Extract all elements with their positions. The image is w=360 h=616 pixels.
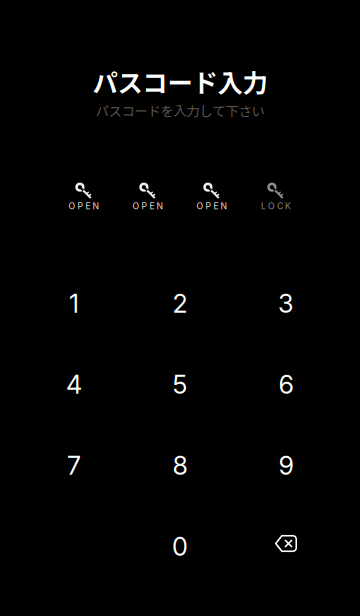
- staticText: O P E N: [132, 201, 163, 211]
- staticText: O P E N: [196, 201, 227, 211]
- staticText: 6: [278, 369, 293, 400]
- button[interactable]: 9: [233, 425, 339, 506]
- staticText: L O C K: [261, 201, 291, 211]
- button[interactable]: 1: [21, 263, 127, 344]
- staticText: 2: [172, 288, 187, 319]
- button[interactable]: 4: [21, 344, 127, 425]
- button[interactable]: 5: [127, 344, 233, 425]
- button[interactable]: Delete: [233, 506, 339, 587]
- staticText: 7: [67, 450, 81, 481]
- staticText: 1: [69, 288, 79, 319]
- button[interactable]: 8: [127, 425, 233, 506]
- staticText: パスコード入力: [92, 63, 267, 100]
- staticText: パスコードを入力して下さい: [95, 101, 264, 120]
- button[interactable]: 2: [127, 263, 233, 344]
- button[interactable]: 3: [233, 263, 339, 344]
- staticText: 8: [172, 450, 187, 481]
- staticText: O P E N: [68, 201, 99, 211]
- staticText: 9: [278, 450, 293, 481]
- button[interactable]: 6: [233, 344, 339, 425]
- button[interactable]: 0: [127, 506, 233, 587]
- staticText: 5: [172, 369, 187, 400]
- button[interactable]: 7: [21, 425, 127, 506]
- staticText: 3: [278, 288, 294, 319]
- staticText: 4: [66, 369, 82, 400]
- staticText: 0: [172, 531, 188, 562]
